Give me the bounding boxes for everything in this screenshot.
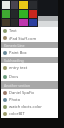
- staticText: Photo: [9, 97, 21, 102]
- staticText: colorBIT: [9, 111, 25, 116]
- button[interactable]: Paint Box: [1, 48, 58, 57]
- staticText: Text: [9, 28, 17, 33]
- button[interactable]: Docs: [1, 72, 58, 81]
- staticText: entry text: [9, 65, 28, 70]
- staticText: Docs: [9, 74, 19, 79]
- button[interactable]: Photo: [1, 96, 58, 103]
- staticText: Generic Line: [4, 43, 25, 48]
- staticText: Subheading: [4, 58, 24, 63]
- button[interactable]: watch docts.color: [1, 103, 58, 110]
- button[interactable]: Text: [1, 27, 58, 34]
- button[interactable]: entry text: [1, 63, 58, 72]
- button[interactable]: iPad Stuff.com: [1, 34, 58, 42]
- staticText: iPad Stuff.com: [9, 36, 37, 41]
- staticText: Another section: [4, 83, 31, 88]
- button[interactable]: colorBIT: [1, 110, 58, 117]
- staticText: Daniel SpaFix: [9, 90, 35, 95]
- staticText: watch docts.color: [9, 104, 42, 109]
- staticText: Paint Box: [9, 50, 27, 55]
- button[interactable]: Daniel SpaFix: [1, 89, 58, 96]
